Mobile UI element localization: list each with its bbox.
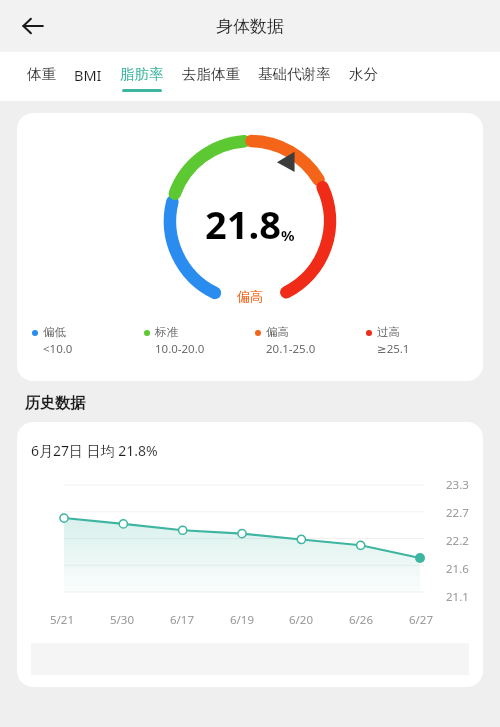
- staticText: 10.0-20.0: [155, 341, 205, 357]
- button[interactable]: 基础代谢率: [249, 52, 340, 89]
- staticText: <10.0: [43, 341, 73, 357]
- staticText: 脂肪率: [120, 65, 164, 83]
- staticText: 去脂体重: [182, 65, 240, 83]
- staticText: 21.6: [446, 561, 469, 577]
- staticText: 过高: [377, 325, 400, 339]
- staticText: 偏高: [266, 325, 289, 339]
- staticText: ≥25.1: [377, 341, 410, 357]
- staticText: 6月27日 日均 21.8%: [31, 441, 158, 460]
- staticText: 标准: [155, 325, 178, 339]
- staticText: 6/19: [230, 612, 255, 628]
- staticText: 21.8: [205, 198, 281, 250]
- button[interactable]: Back: [12, 5, 54, 47]
- button[interactable]: 脂肪率: [111, 52, 173, 92]
- staticText: 6/26: [349, 612, 374, 628]
- staticText: 21.1: [446, 589, 469, 605]
- staticText: 23.3: [446, 477, 469, 493]
- staticText: BMI: [74, 65, 102, 85]
- staticText: 水分: [349, 65, 378, 83]
- staticText: 偏低: [43, 325, 66, 339]
- staticText: 6/17: [170, 612, 195, 628]
- staticText: 基础代谢率: [258, 65, 331, 83]
- staticText: 22.7: [446, 505, 469, 521]
- button[interactable]: 体重: [18, 52, 65, 89]
- button[interactable]: 去脂体重: [173, 52, 249, 89]
- staticText: 身体数据: [216, 16, 284, 37]
- staticText: %: [281, 225, 295, 245]
- button[interactable]: 水分: [340, 52, 387, 89]
- staticText: 5/21: [50, 612, 75, 628]
- staticText: 6/27: [409, 612, 434, 628]
- staticText: 5/30: [110, 612, 135, 628]
- staticText: 22.2: [446, 533, 469, 549]
- button[interactable]: BMI: [65, 52, 111, 91]
- staticText: 体重: [27, 65, 56, 83]
- staticText: 偏高: [237, 288, 263, 304]
- staticText: 历史数据: [25, 394, 85, 413]
- staticText: 20.1-25.0: [266, 341, 316, 357]
- staticText: 6/20: [289, 612, 314, 628]
